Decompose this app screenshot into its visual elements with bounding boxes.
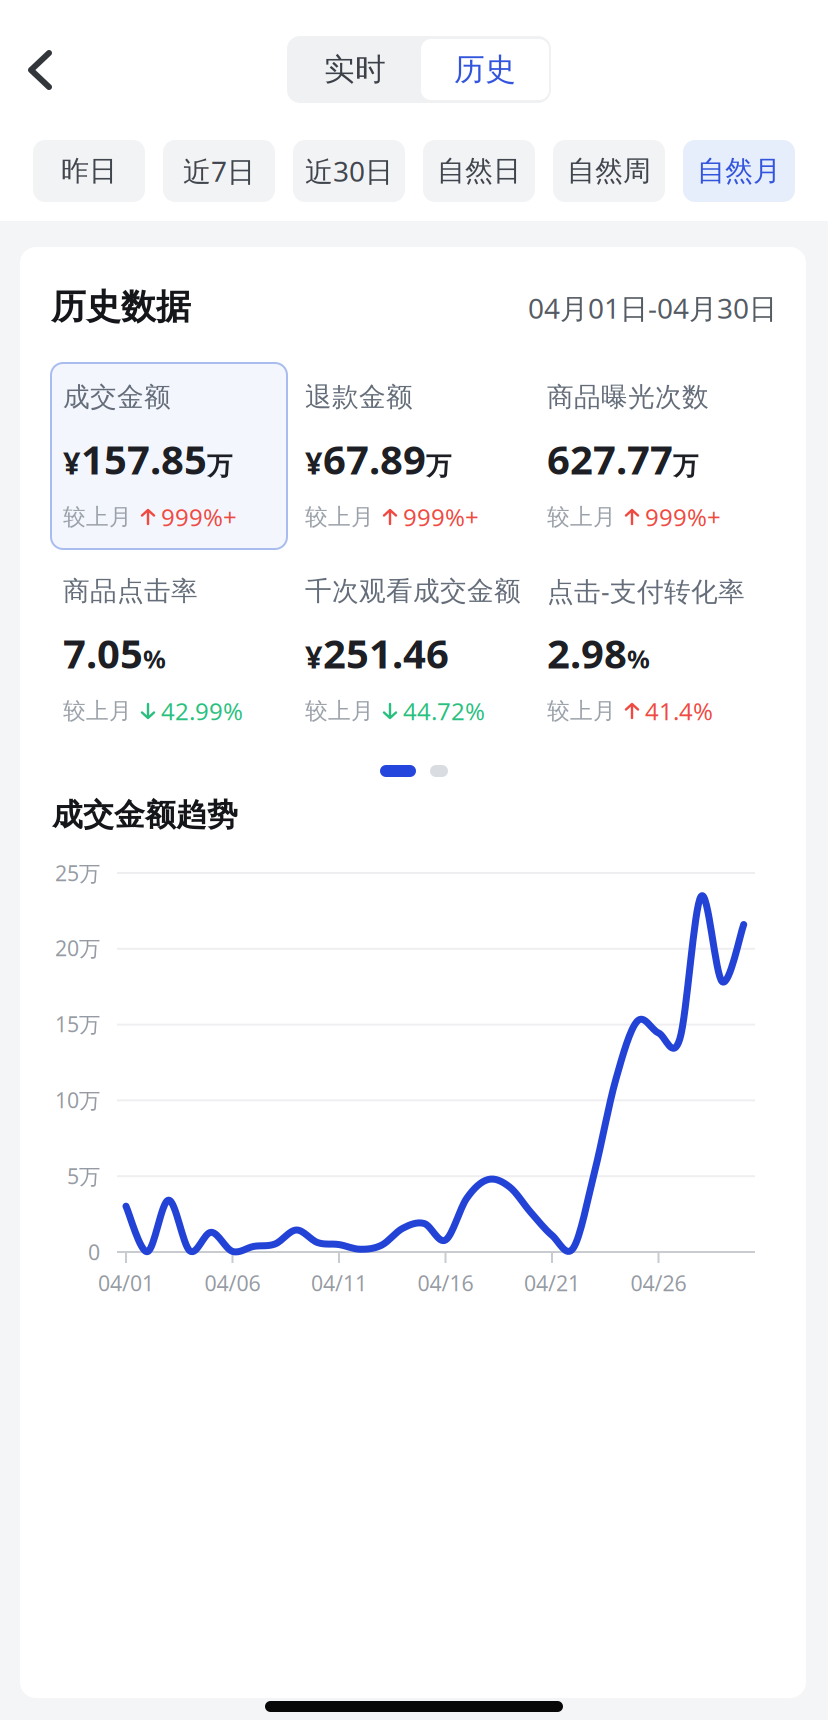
staticText: % bbox=[143, 642, 166, 675]
staticText: 15万 bbox=[55, 1010, 100, 1038]
staticText: ¥ bbox=[305, 442, 323, 483]
staticText: 5万 bbox=[67, 1162, 100, 1190]
staticText: 自然月 bbox=[697, 154, 781, 188]
staticText: 42.99% bbox=[161, 695, 243, 727]
staticText: 昨日 bbox=[61, 154, 117, 188]
staticText: 41.4% bbox=[645, 695, 713, 727]
staticText: 25万 bbox=[55, 859, 100, 887]
staticText: 较上月 bbox=[63, 697, 132, 725]
button[interactable]: 历史 bbox=[421, 39, 549, 100]
staticText: 退款金额 bbox=[305, 381, 413, 413]
button[interactable]: 商品点击率 bbox=[0, 0, 828, 1720]
staticText: ¥ bbox=[63, 442, 81, 483]
staticText: 点击-支付转化率 bbox=[547, 573, 745, 609]
staticText: 较上月 bbox=[305, 503, 374, 531]
staticText: 万 bbox=[207, 450, 232, 482]
staticText: 自然日 bbox=[437, 154, 521, 188]
staticText: 商品曝光次数 bbox=[547, 381, 709, 413]
staticText: 999%+ bbox=[403, 501, 479, 533]
staticText: 04/26 bbox=[630, 1269, 686, 1297]
button[interactable]: 近7日 bbox=[163, 140, 275, 202]
button[interactable]: Back bbox=[14, 50, 66, 90]
staticText: 万 bbox=[673, 450, 698, 482]
staticText: 10万 bbox=[55, 1086, 100, 1114]
staticText: 较上月 bbox=[547, 503, 616, 531]
staticText: 157.85 bbox=[81, 432, 207, 485]
button[interactable]: 自然日 bbox=[423, 140, 535, 202]
staticText: 千次观看成交金额 bbox=[305, 575, 521, 607]
staticText: 较上月 bbox=[547, 697, 616, 725]
staticText: 04/16 bbox=[417, 1269, 473, 1297]
button[interactable]: 自然周 bbox=[553, 140, 665, 202]
button[interactable]: 自然月 bbox=[683, 140, 795, 202]
staticText: 近7日 bbox=[183, 152, 255, 190]
button[interactable]: 近30日 bbox=[293, 140, 405, 202]
staticText: 2.98 bbox=[547, 626, 627, 679]
button[interactable]: 退款金额 bbox=[0, 0, 828, 1720]
button[interactable]: 千次观看成交金额 bbox=[0, 0, 828, 1720]
button[interactable]: 实时 bbox=[289, 36, 421, 103]
staticText: % bbox=[627, 642, 650, 675]
staticText: 67.89 bbox=[323, 432, 426, 485]
staticText: 较上月 bbox=[63, 503, 132, 531]
staticText: 成交金额趋势 bbox=[52, 796, 238, 834]
button[interactable]: 商品曝光次数 bbox=[0, 0, 828, 1720]
staticText: 历史数据 bbox=[51, 286, 191, 328]
staticText: 实时 bbox=[324, 51, 386, 88]
staticText: ¥ bbox=[305, 636, 323, 677]
staticText: 627.77 bbox=[547, 432, 673, 485]
staticText: 999%+ bbox=[645, 501, 721, 533]
button[interactable]: 昨日 bbox=[33, 140, 145, 202]
staticText: 04月01日-04月30日 bbox=[528, 289, 777, 327]
staticText: 44.72% bbox=[403, 695, 485, 727]
staticText: 04/06 bbox=[204, 1269, 260, 1297]
staticText: 万 bbox=[426, 450, 451, 482]
staticText: 20万 bbox=[55, 934, 100, 962]
staticText: 04/21 bbox=[524, 1269, 580, 1297]
staticText: 较上月 bbox=[305, 697, 374, 725]
staticText: 自然周 bbox=[567, 154, 651, 188]
staticText: 商品点击率 bbox=[63, 575, 198, 607]
button[interactable]: 点击-支付转化率 bbox=[0, 0, 828, 1720]
staticText: 历史 bbox=[454, 51, 516, 88]
staticText: 近30日 bbox=[305, 152, 393, 190]
staticText: 251.46 bbox=[323, 626, 449, 679]
staticText: 成交金额 bbox=[63, 381, 171, 413]
staticText: 04/11 bbox=[311, 1269, 367, 1297]
staticText: 04/01 bbox=[98, 1269, 154, 1297]
button[interactable]: 成交金额 bbox=[0, 0, 828, 1720]
staticText: 7.05 bbox=[63, 626, 143, 679]
staticText: 999%+ bbox=[161, 501, 237, 533]
staticText: 0 bbox=[88, 1238, 100, 1266]
